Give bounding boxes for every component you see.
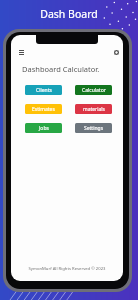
button[interactable]: Settings: [112, 48, 121, 57]
button[interactable]: Clients: [25, 85, 62, 95]
button[interactable]: Settings: [75, 123, 112, 133]
staticText: Dashboard Calculator.: [22, 64, 100, 74]
staticText: Jobs: [39, 125, 49, 132]
button[interactable]: Estimates: [25, 104, 62, 114]
staticText: SymonMurf All Rights Reserved © 2023: [11, 266, 123, 272]
staticText: Dash Board: [0, 7, 138, 21]
staticText: Calculator: [82, 87, 106, 94]
button[interactable]: Menu: [17, 48, 26, 57]
button[interactable]: Calculator: [75, 85, 112, 95]
button[interactable]: materials: [75, 104, 112, 114]
staticText: materials: [83, 106, 105, 113]
staticText: Clients: [36, 87, 52, 94]
button[interactable]: Jobs: [25, 123, 62, 133]
staticText: Settings: [84, 125, 104, 132]
staticText: Estimates: [32, 106, 55, 113]
